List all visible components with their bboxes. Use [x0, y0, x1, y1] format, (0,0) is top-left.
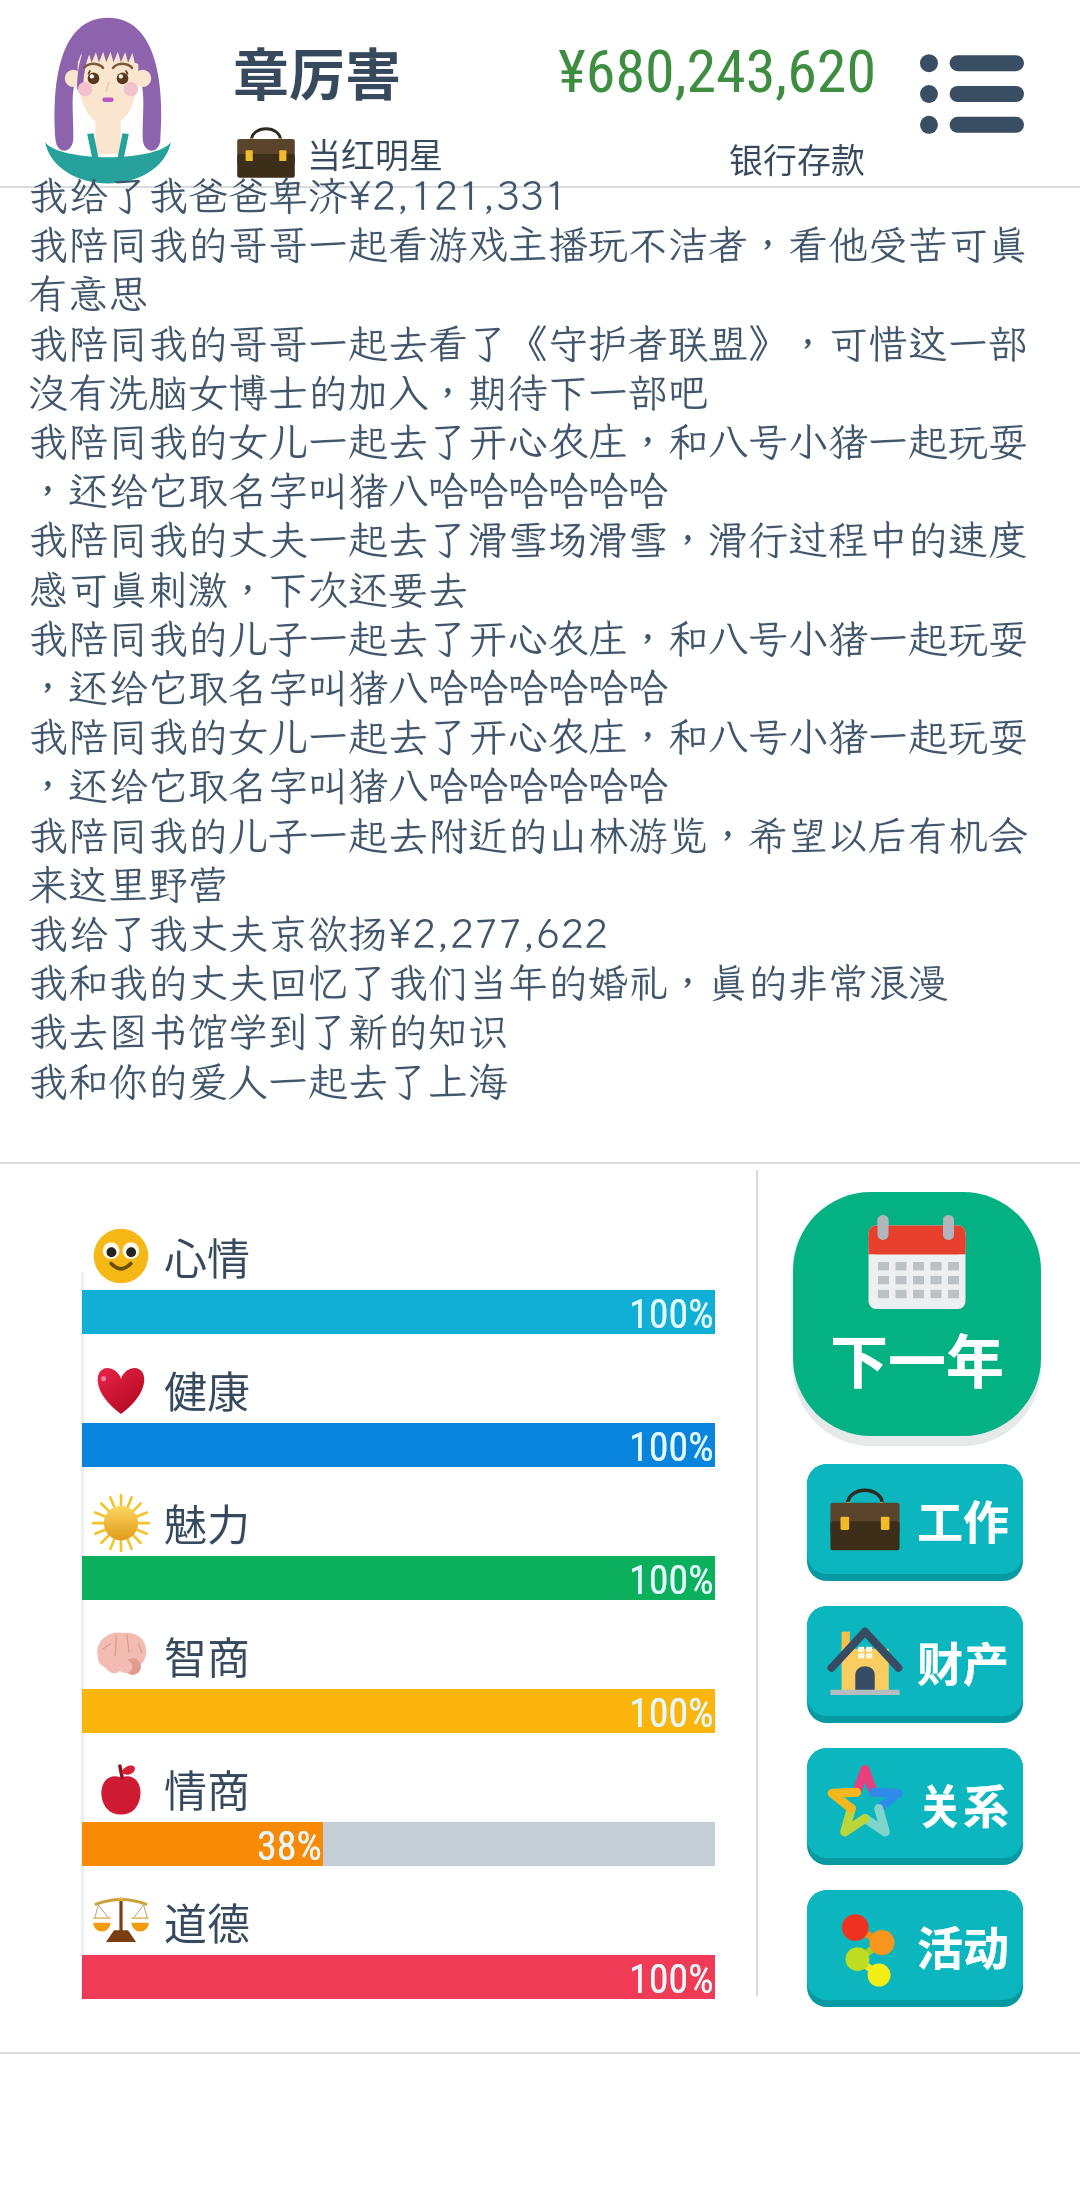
- staticText: 我陪同我的丈夫一起去了滑雪场滑雪，滑行过程中的速度: [28, 513, 1028, 566]
- button[interactable]: 魅力: [92, 1491, 250, 1553]
- staticText: 我陪同我的女儿一起去了开心农庄，和八号小猪一起玩耍: [28, 710, 1028, 763]
- button[interactable]: 财产: [807, 1606, 1023, 1716]
- button[interactable]: 当红明星: [236, 126, 443, 180]
- staticText: 100%: [629, 1557, 714, 1601]
- button[interactable]: 心情: [92, 1225, 250, 1287]
- staticText: 我陪同我的女儿一起去了开心农庄，和八号小猪一起玩耍: [28, 415, 1028, 468]
- staticText: 下一年: [830, 1316, 1005, 1400]
- button[interactable]: 智商: [92, 1624, 250, 1686]
- staticText: 感可真刺激，下次还要去: [28, 563, 468, 616]
- staticText: 来这里野营: [28, 858, 228, 911]
- button[interactable]: 关系: [807, 1748, 1023, 1858]
- staticText: 我去图书馆学到了新的知识: [28, 1005, 508, 1058]
- button[interactable]: 工作: [807, 1464, 1023, 1574]
- staticText: ¥680,243,620: [558, 36, 877, 106]
- button[interactable]: 健康: [92, 1358, 250, 1420]
- staticText: 我和我的丈夫回忆了我们当年的婚礼，真的非常浪漫: [28, 956, 948, 1009]
- staticText: 我给了我丈夫京欲扬¥2,277,622: [28, 907, 608, 960]
- button[interactable]: 活动: [807, 1890, 1023, 2000]
- button[interactable]: 情商: [92, 1757, 250, 1819]
- staticText: 当红明星: [307, 129, 443, 178]
- staticText: 章厉害: [233, 30, 401, 111]
- staticText: 我给了我爸爸卑济¥2,121,331: [28, 169, 568, 222]
- button[interactable]: Menu: [898, 34, 1046, 154]
- staticText: 我陪同我的哥哥一起去看了《守护者联盟》，可惜这一部: [28, 317, 1028, 370]
- staticText: 财产: [917, 1628, 1009, 1695]
- staticText: 智商: [164, 1624, 250, 1686]
- button[interactable]: 我给了我爸爸卑济¥2,121,331: [0, 188, 1080, 1162]
- staticText: 我陪同我的哥哥一起看游戏主播玩不洁者，看他受苦可真: [28, 218, 1028, 271]
- staticText: 银行存款: [729, 134, 865, 183]
- staticText: 我和你的爱人一起去了上海: [28, 1055, 508, 1108]
- staticText: 工作: [917, 1486, 1009, 1553]
- staticText: 100%: [629, 1291, 714, 1335]
- staticText: 38%: [257, 1823, 322, 1867]
- button[interactable]: Avatar: [45, 12, 171, 178]
- staticText: 关系: [917, 1770, 1009, 1837]
- staticText: 我陪同我的儿子一起去附近的山林游览，希望以后有机会: [28, 809, 1028, 862]
- staticText: 健康: [164, 1358, 250, 1420]
- staticText: 100%: [629, 1956, 714, 2000]
- staticText: ，还给它取名字叫猪八哈哈哈哈哈哈: [28, 759, 668, 812]
- staticText: 100%: [629, 1424, 714, 1468]
- staticText: 100%: [629, 1690, 714, 1734]
- staticText: 心情: [164, 1225, 250, 1287]
- button[interactable]: 下一年: [793, 1192, 1041, 1436]
- staticText: 魅力: [164, 1491, 250, 1553]
- staticText: 没有洗脑女博士的加入，期待下一部吧: [28, 366, 708, 419]
- staticText: 我陪同我的儿子一起去了开心农庄，和八号小猪一起玩耍: [28, 612, 1028, 665]
- button[interactable]: 道德: [92, 1890, 250, 1952]
- staticText: ，还给它取名字叫猪八哈哈哈哈哈哈: [28, 661, 668, 714]
- staticText: 有意思: [28, 267, 148, 320]
- staticText: 活动: [917, 1912, 1009, 1979]
- staticText: ，还给它取名字叫猪八哈哈哈哈哈哈: [28, 464, 668, 517]
- staticText: 情商: [164, 1757, 250, 1819]
- staticText: 道德: [164, 1890, 250, 1952]
